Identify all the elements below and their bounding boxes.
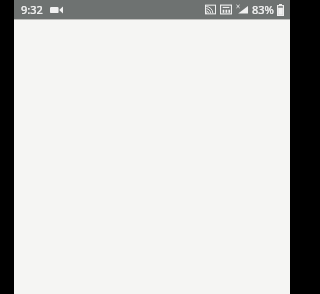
other: Cast <box>205 4 216 15</box>
other: SIM card status <box>220 4 232 15</box>
other: Battery 83 percent <box>277 4 284 16</box>
other: Screen recording <box>50 4 63 16</box>
staticText: 83% <box>252 2 274 17</box>
staticText: 9:32 <box>21 2 43 17</box>
other: Mobile signal <box>236 4 248 15</box>
